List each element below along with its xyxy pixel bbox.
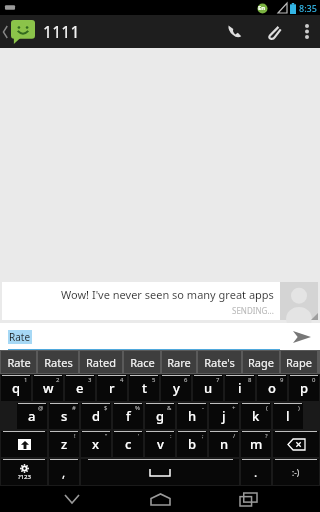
- button[interactable]: Rates: [38, 351, 78, 373]
- staticText: 3: [88, 376, 92, 384]
- staticText: Race: [130, 355, 155, 370]
- button[interactable]: z: [49, 431, 79, 457]
- staticText: :-): [292, 467, 300, 478]
- staticText: j: [222, 407, 226, 425]
- staticText: s: [61, 407, 68, 425]
- staticText: l: [286, 407, 290, 425]
- staticText: 7: [216, 376, 220, 384]
- button[interactable]: ,: [49, 459, 79, 485]
- button[interactable]: Attach: [254, 15, 294, 48]
- staticText: 9: [280, 376, 284, 384]
- staticText: y: [173, 379, 180, 397]
- button[interactable]: s: [49, 403, 79, 429]
- button[interactable]: Backspace: [273, 431, 319, 457]
- button[interactable]: d: [81, 403, 111, 429]
- button[interactable]: u: [193, 375, 223, 401]
- staticText: Rates: [44, 355, 73, 370]
- button[interactable]: Send: [284, 323, 320, 350]
- button[interactable]: Hide keyboard: [41, 486, 103, 512]
- staticText: !: [74, 432, 76, 440]
- staticText: :: [170, 432, 172, 440]
- button[interactable]: .: [241, 459, 271, 485]
- button[interactable]: Rate: [8, 323, 280, 350]
- staticText: $: [104, 404, 108, 412]
- button[interactable]: More options: [294, 15, 320, 48]
- button[interactable]: m: [241, 431, 271, 457]
- staticText: /: [233, 432, 236, 440]
- staticText: g: [156, 407, 165, 425]
- button[interactable]: Wow! I've never seen so many great apps: [2, 282, 280, 320]
- staticText: Rate: [9, 330, 31, 344]
- button[interactable]: Rage: [243, 351, 279, 373]
- button[interactable]: r: [97, 375, 127, 401]
- staticText: SENDING...: [232, 305, 274, 316]
- button[interactable]: x: [81, 431, 111, 457]
- button[interactable]: Rape: [281, 351, 317, 373]
- button[interactable]: o: [257, 375, 287, 401]
- staticText: %: [135, 404, 140, 412]
- staticText: ;: [202, 432, 204, 440]
- button[interactable]: y: [161, 375, 191, 401]
- staticText: Rate's: [204, 355, 235, 370]
- staticText: &: [167, 404, 172, 412]
- button[interactable]: Back to conversations: [0, 15, 37, 48]
- button[interactable]: Recent apps: [217, 486, 279, 512]
- staticText: 4: [120, 376, 124, 384]
- button[interactable]: Rated: [80, 351, 122, 373]
- staticText: q: [12, 379, 21, 397]
- staticText: #: [72, 404, 76, 412]
- staticText: Rate: [7, 355, 31, 370]
- staticText: 5: [152, 376, 156, 384]
- staticText: En: [258, 4, 266, 12]
- button[interactable]: w: [33, 375, 63, 401]
- button[interactable]: c: [113, 431, 143, 457]
- button[interactable]: v: [145, 431, 175, 457]
- staticText: n: [220, 435, 229, 453]
- staticText: f: [126, 407, 131, 425]
- button[interactable]: j: [209, 403, 239, 429]
- button[interactable]: Rate's: [198, 351, 241, 373]
- button[interactable]: l: [273, 403, 303, 429]
- staticText: ?: [265, 432, 268, 440]
- staticText: @: [38, 404, 44, 412]
- staticText: i: [238, 379, 242, 397]
- staticText: k: [252, 407, 260, 425]
- staticText: Wow! I've never seen so many great apps: [61, 287, 274, 302]
- staticText: (: [266, 404, 268, 412]
- staticText: 2: [56, 376, 60, 384]
- button[interactable]: e: [65, 375, 95, 401]
- staticText: o: [268, 379, 276, 397]
- button[interactable]: Rate: [1, 351, 36, 373]
- staticText: 0: [312, 376, 316, 384]
- staticText: 8: [248, 376, 252, 384]
- button[interactable]: Home: [129, 486, 191, 512]
- button[interactable]: Symbols and settings: [1, 459, 47, 485]
- button[interactable]: Call: [214, 15, 254, 48]
- staticText: u: [204, 379, 213, 397]
- staticText: c: [125, 435, 132, 453]
- button[interactable]: Shift: [1, 431, 47, 457]
- button[interactable]: a: [17, 403, 47, 429]
- staticText: p: [300, 379, 309, 397]
- button[interactable]: n: [209, 431, 239, 457]
- button[interactable]: b: [177, 431, 207, 457]
- button[interactable]: Race: [124, 351, 160, 373]
- staticText: h: [188, 407, 197, 425]
- staticText: w: [43, 379, 54, 397]
- staticText: Rated: [86, 355, 116, 370]
- button[interactable]: p: [289, 375, 319, 401]
- button[interactable]: t: [129, 375, 159, 401]
- button[interactable]: Rare: [162, 351, 196, 373]
- button[interactable]: q: [1, 375, 31, 401]
- button[interactable]: f: [113, 403, 143, 429]
- button[interactable]: i: [225, 375, 255, 401]
- button[interactable]: Emoji: [273, 459, 319, 485]
- staticText: 8:35: [299, 2, 317, 14]
- button[interactable]: k: [241, 403, 271, 429]
- button[interactable]: Space: [81, 459, 239, 485]
- staticText: ': [138, 432, 140, 440]
- button[interactable]: g: [145, 403, 175, 429]
- button[interactable]: h: [177, 403, 207, 429]
- staticText: m: [250, 435, 263, 453]
- staticText: Rare: [167, 355, 191, 370]
